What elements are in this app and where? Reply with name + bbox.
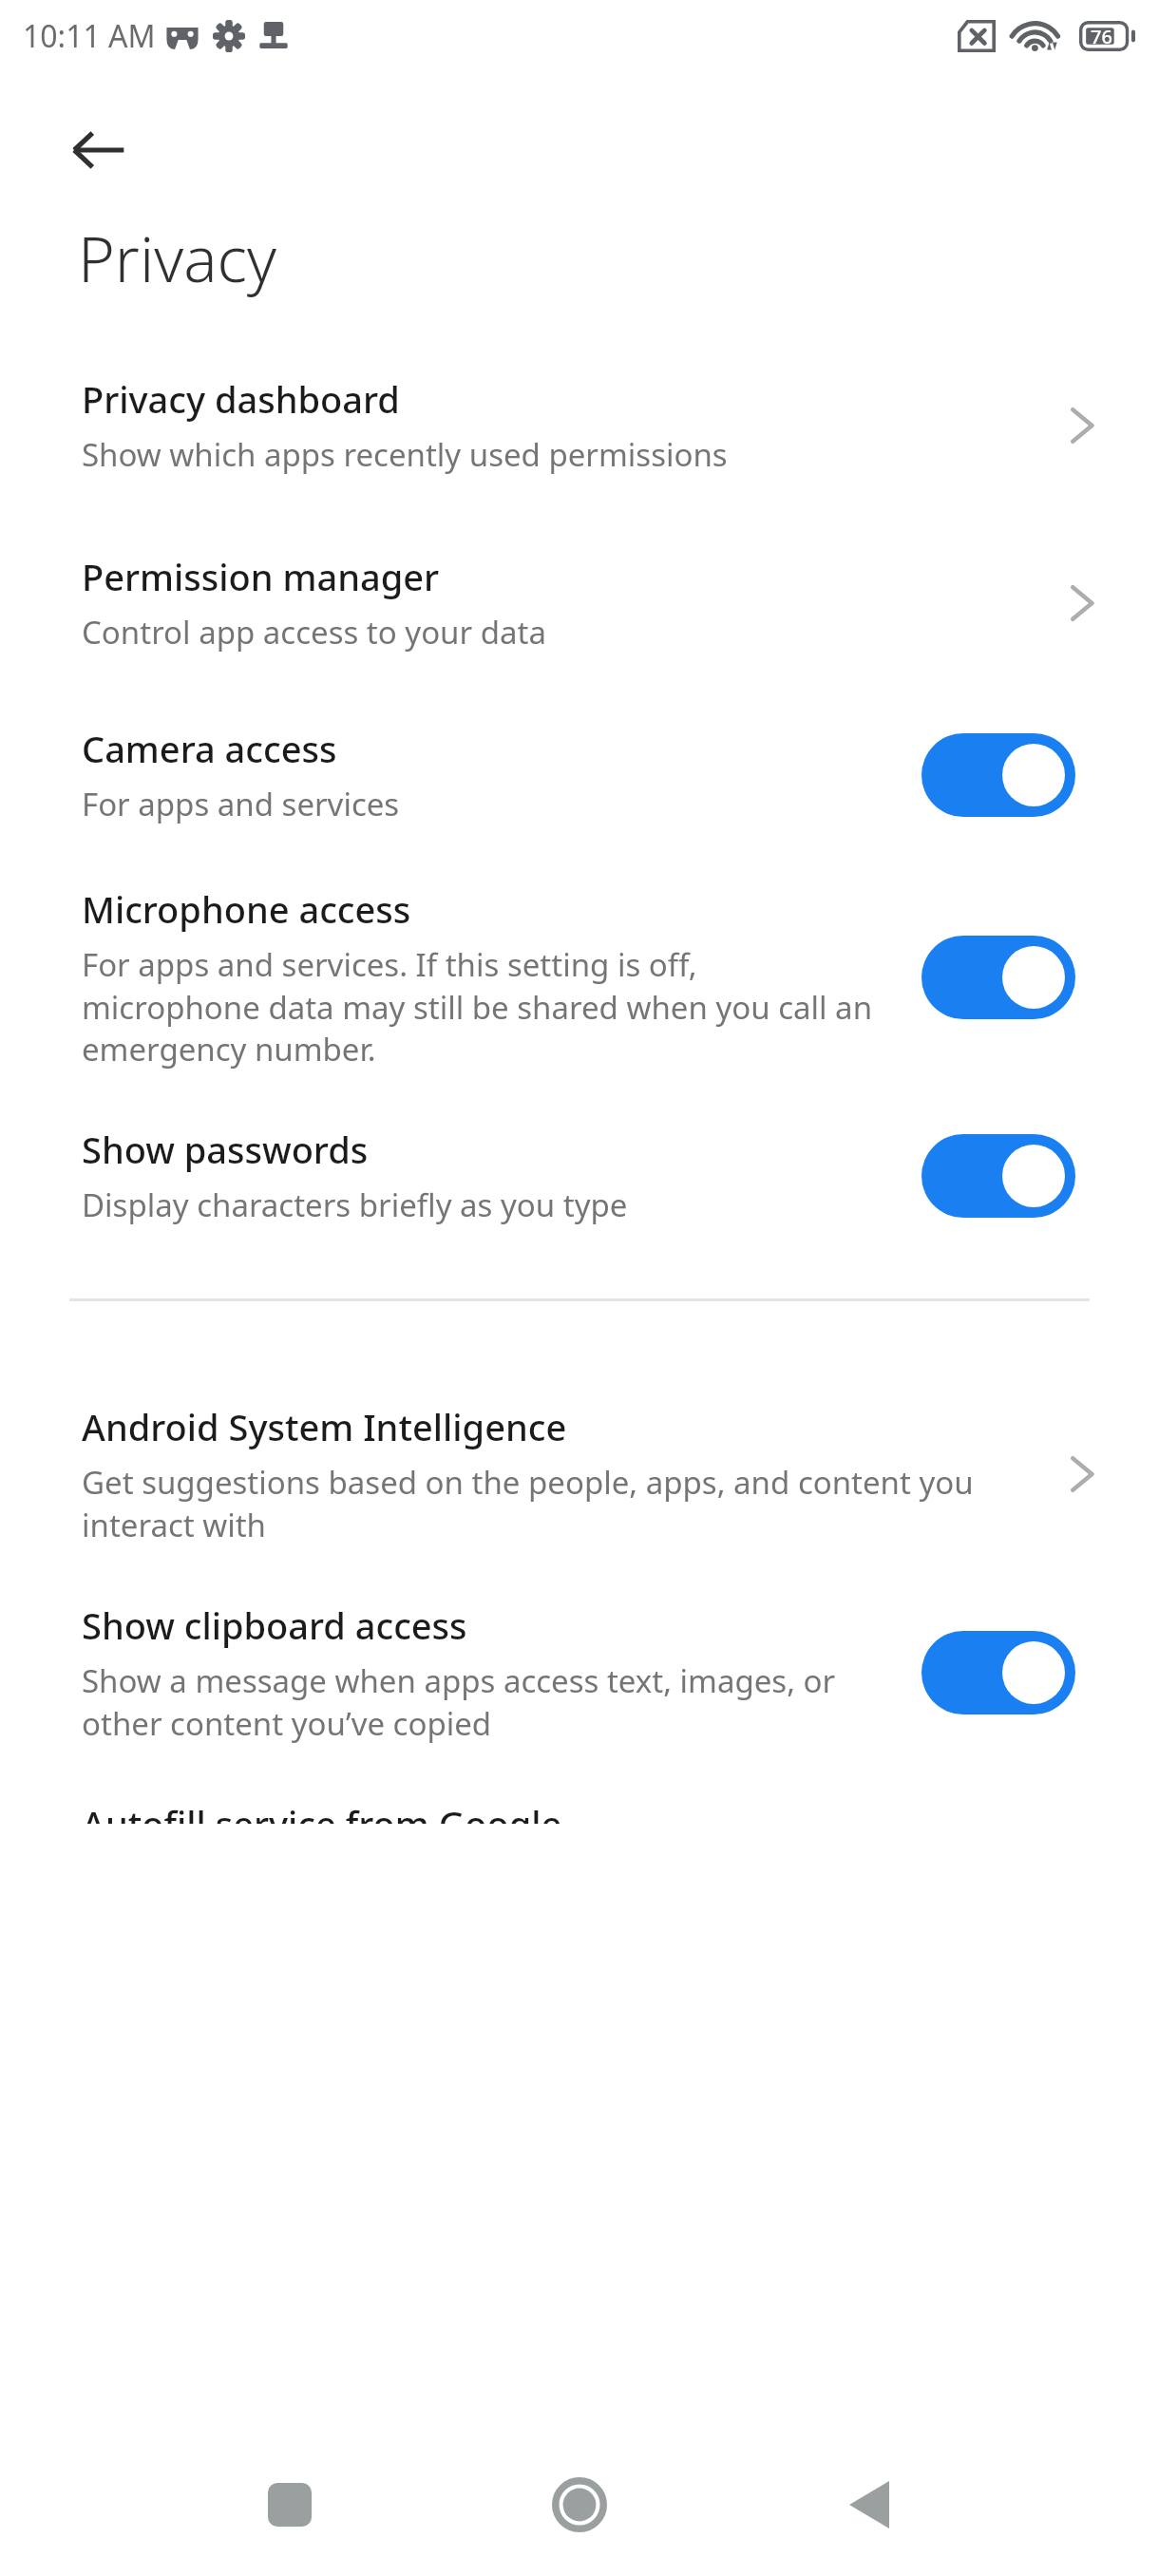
button[interactable]: Microphone access xyxy=(0,884,1159,1070)
staticText: Privacy dashboard xyxy=(82,374,400,424)
button[interactable]: Autofill service from Google xyxy=(0,1799,1159,1824)
button[interactable]: Show clipboard access switch, on xyxy=(921,1631,1075,1714)
button[interactable]: Camera access xyxy=(0,724,1159,825)
staticText: Microphone access xyxy=(82,884,411,934)
staticText: Autofill service from Google xyxy=(82,1799,562,1824)
button[interactable]: Android System Intelligence xyxy=(0,1402,1159,1545)
staticText: Android System Intelligence xyxy=(82,1402,567,1451)
button[interactable]: Privacy dashboard xyxy=(0,374,1159,476)
staticText: 76 xyxy=(1091,24,1112,49)
staticText: Show which apps recently used permission… xyxy=(82,433,728,476)
staticText: Show passwords xyxy=(82,1125,369,1174)
staticText: 10:11 AM xyxy=(23,15,156,57)
staticText: Camera access xyxy=(82,724,337,773)
button[interactable]: Show passwords switch, on xyxy=(921,1134,1075,1218)
staticText: Display characters briefly as you type xyxy=(82,1184,628,1226)
staticText: Show a message when apps access text, im… xyxy=(82,1659,883,1744)
staticText: Get suggestions based on the people, app… xyxy=(82,1461,1032,1545)
button[interactable]: Permission manager xyxy=(0,552,1159,653)
staticText: For apps and services. If this setting i… xyxy=(82,943,883,1070)
button[interactable]: Microphone access switch, on xyxy=(921,936,1075,1019)
staticText: Privacy xyxy=(78,215,276,300)
staticText: Control app access to your data xyxy=(82,611,546,653)
button[interactable]: Camera access switch, on xyxy=(921,733,1075,817)
staticText: For apps and services xyxy=(82,783,400,825)
staticText: Permission manager xyxy=(82,552,440,601)
button[interactable]: Show clipboard access xyxy=(0,1601,1159,1744)
staticText: Show clipboard access xyxy=(82,1601,467,1650)
button[interactable]: Back xyxy=(817,2453,921,2557)
button[interactable]: Recent apps xyxy=(237,2453,342,2557)
button[interactable]: Show passwords xyxy=(0,1125,1159,1226)
button[interactable]: Back xyxy=(59,110,139,190)
button[interactable]: Home xyxy=(527,2453,632,2557)
